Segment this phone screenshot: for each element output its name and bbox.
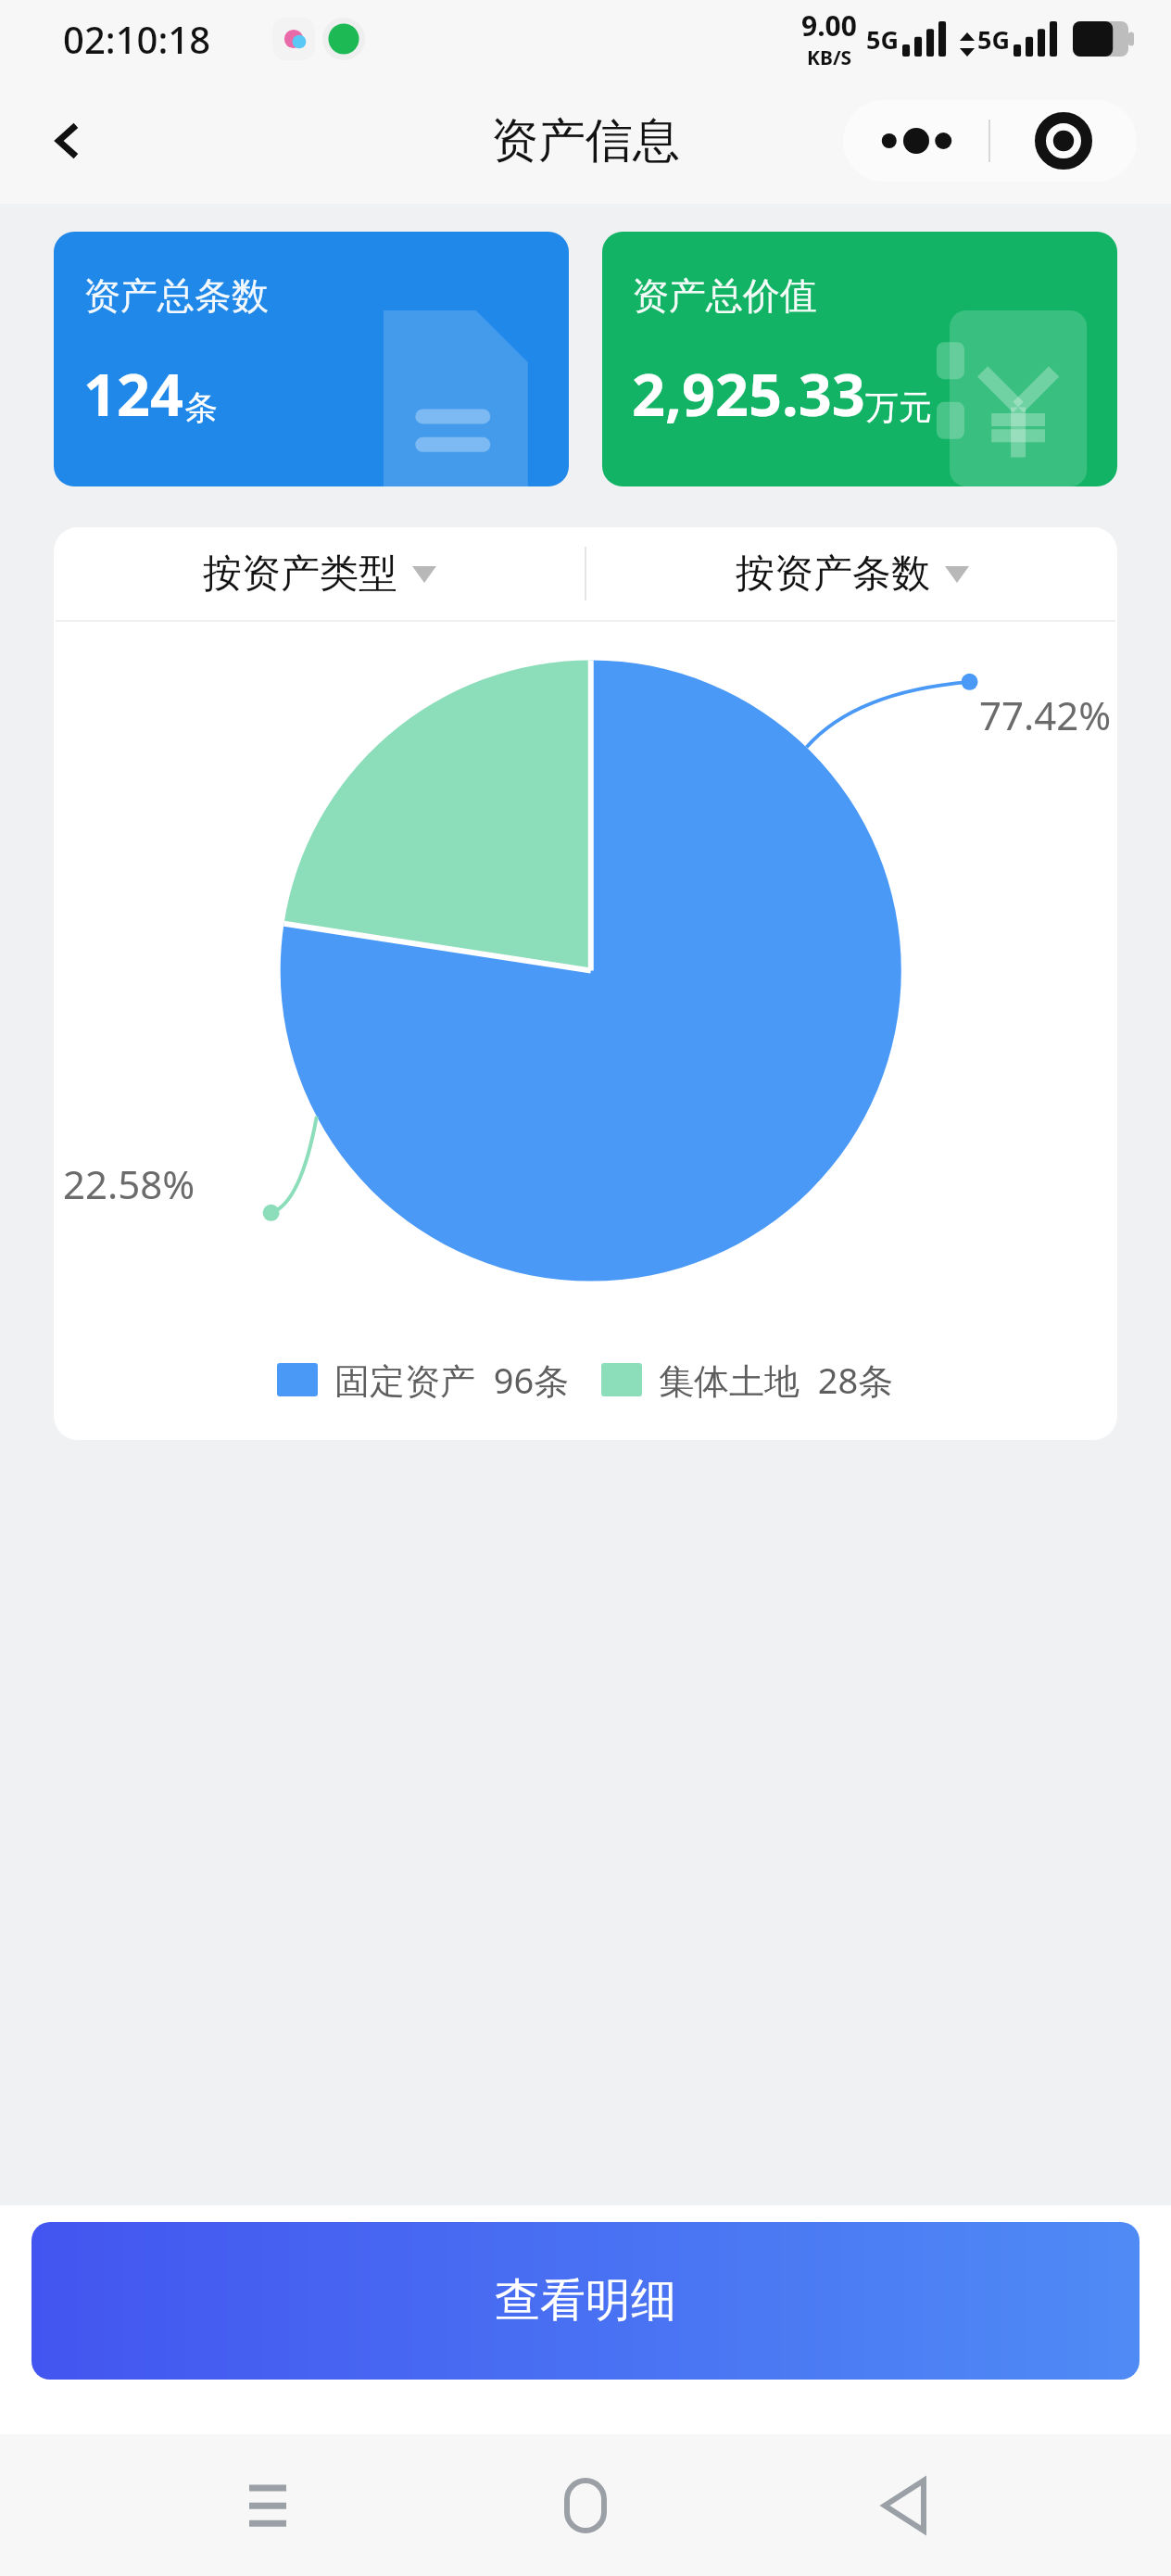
- button[interactable]: 固定资产 96条: [277, 1356, 570, 1404]
- button[interactable]: 资产总价值: [602, 232, 1117, 486]
- button[interactable]: Back: [853, 2455, 955, 2557]
- staticText: 2,925.33: [632, 354, 865, 434]
- staticText: 按资产类型: [203, 549, 397, 599]
- staticText: 22.58%: [63, 1157, 195, 1210]
- staticText: 条: [184, 386, 218, 428]
- staticText: 按资产条数: [736, 549, 930, 599]
- button[interactable]: 按资产类型: [54, 549, 585, 599]
- staticText: 查看明细: [495, 2272, 676, 2330]
- staticText: 集体土地 28条: [659, 1356, 894, 1404]
- staticText: 固定资产 96条: [334, 1356, 570, 1404]
- staticText: KB/S: [807, 44, 852, 71]
- staticText: 资产信息: [491, 111, 680, 170]
- staticText: 资产总条数: [83, 272, 269, 319]
- button[interactable]: Home: [535, 2455, 636, 2557]
- staticText: 77.42%: [979, 688, 1112, 741]
- button[interactable]: 集体土地 28条: [601, 1356, 894, 1404]
- button[interactable]: More options: [844, 100, 988, 182]
- button[interactable]: 按资产条数: [586, 549, 1117, 599]
- staticText: 9.00: [801, 6, 857, 44]
- button[interactable]: Recents: [217, 2455, 319, 2557]
- staticText: 124: [83, 354, 184, 434]
- staticText: 5G: [977, 22, 1010, 57]
- button[interactable]: Back: [24, 96, 113, 185]
- staticText: 5G: [866, 22, 899, 57]
- button[interactable]: Close: [990, 100, 1136, 182]
- staticText: 资产总价值: [632, 272, 817, 319]
- button[interactable]: 资产总条数: [54, 232, 569, 486]
- staticText: 02:10:18: [63, 14, 211, 64]
- button[interactable]: 查看明细: [31, 2222, 1140, 2380]
- staticText: 万元: [865, 386, 932, 428]
- staticText: 监督管理平台-财务系统: [574, 2487, 919, 2532]
